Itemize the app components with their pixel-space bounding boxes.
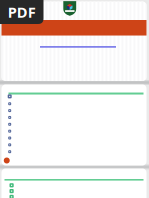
button[interactable]: PDF (0, 0, 43, 24)
staticText: PDF (8, 2, 36, 22)
